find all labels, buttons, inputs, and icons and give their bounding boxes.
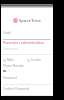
button[interactable]: Female bbox=[27, 58, 41, 62]
staticText: Female bbox=[31, 58, 41, 62]
button[interactable]: +1 bbox=[3, 69, 11, 73]
staticText: +1 bbox=[7, 69, 11, 73]
staticText: Email bbox=[3, 31, 11, 35]
staticText: Password bbox=[3, 76, 17, 80]
staticText: Phone Number bbox=[3, 64, 25, 68]
button[interactable]: Male bbox=[3, 58, 14, 62]
staticText: Confirm Password bbox=[3, 87, 29, 91]
staticText: Male bbox=[7, 58, 14, 62]
staticText: Username bbox=[3, 47, 18, 51]
staticText: Please enter a valid email address bbox=[3, 41, 45, 45]
staticText: SpaceTime bbox=[19, 17, 41, 23]
